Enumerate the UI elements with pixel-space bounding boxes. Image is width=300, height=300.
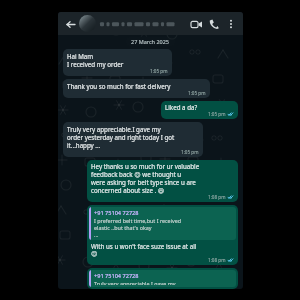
staticText: Thank you so much for fast delivery	[67, 82, 171, 90]
button[interactable]: Voice call	[205, 15, 223, 33]
staticText: 27 March 2025	[131, 38, 170, 45]
staticText: With us u won't face suze issue at all	[91, 242, 197, 250]
staticText: +91 75104 72728	[94, 209, 139, 217]
staticText: concerned about size . 😃	[91, 186, 165, 194]
staticText: 1:05 pm	[188, 90, 206, 96]
staticText: Liked a da?	[165, 103, 198, 111]
button[interactable]: Thank you so much for fast delivery	[63, 79, 210, 98]
button[interactable]: Liked a da?	[161, 101, 238, 119]
staticText: order yesterday and right today I got	[67, 133, 175, 141]
staticText: 1:08 pm	[208, 257, 226, 263]
button[interactable]: Back	[62, 16, 78, 32]
staticText: 1:05 pm	[150, 68, 168, 74]
button[interactable]: Hey thanks u so much for ur valuable	[87, 160, 238, 202]
staticText: +91 75104 72728	[94, 272, 139, 280]
button[interactable]: +91 75104 72728	[87, 205, 238, 265]
staticText: Hey thanks u so much for ur valuable	[91, 162, 200, 170]
staticText: elastic ..but that's okay	[94, 224, 152, 231]
button[interactable]: More options	[223, 16, 239, 32]
staticText: feedback back 😊 we thought u	[91, 170, 182, 178]
staticText: 1:05 pm	[208, 111, 226, 117]
staticText: it...happy ...	[67, 141, 101, 149]
button[interactable]: Contact photo	[79, 15, 96, 32]
button[interactable]: Hai Mam	[63, 49, 172, 76]
staticText: 1:08 pm	[208, 194, 226, 200]
staticText: I preferred belt time,but I received	[94, 217, 182, 224]
staticText: Truly very appreciable.I gave my	[67, 125, 161, 133]
staticText: Hai Mam	[67, 52, 94, 60]
button[interactable]: Truly very appreciable.I gave my	[63, 122, 203, 157]
staticText: 😊	[91, 250, 98, 257]
staticText: were asking for belt type since u are	[91, 178, 196, 186]
staticText: I received my order	[67, 60, 124, 68]
button[interactable]: Video call	[187, 15, 205, 33]
staticText: ...	[94, 231, 99, 238]
button[interactable]: +91 75104 72728	[87, 268, 238, 289]
button[interactable]	[100, 14, 187, 34]
staticText: Truly very appreciable.I gave my	[94, 280, 176, 285]
staticText: 1:05 pm	[181, 149, 199, 155]
